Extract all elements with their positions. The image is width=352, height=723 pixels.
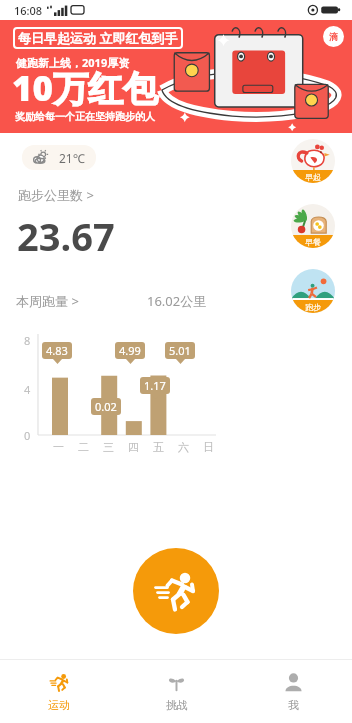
staticText: 10万红包 xyxy=(12,64,159,112)
button[interactable]: 我 xyxy=(235,660,352,723)
staticText: 六 xyxy=(178,440,189,454)
staticText: 16.02公里 xyxy=(147,292,207,310)
staticText: 二 xyxy=(78,440,89,454)
staticText: 早起 xyxy=(305,172,321,182)
staticText: 4.99 xyxy=(119,343,141,358)
staticText: 运动 xyxy=(48,698,70,712)
staticText: 健跑新上线，2019厚资 xyxy=(16,55,130,70)
staticText: 4.83 xyxy=(46,343,68,358)
staticText: 日 xyxy=(203,440,214,454)
staticText: 四 xyxy=(128,440,139,454)
button[interactable]: 每日早起运动 立即红包到手 xyxy=(0,20,352,133)
staticText: 0.02 xyxy=(95,399,117,414)
staticText: 三 xyxy=(103,440,114,454)
button[interactable]: 本周跑量 > xyxy=(0,290,352,312)
staticText: 8 xyxy=(24,333,31,348)
staticText: 0 xyxy=(24,428,31,443)
button[interactable]: 运动 xyxy=(0,660,118,723)
button[interactable]: 挑战 xyxy=(118,660,235,723)
button[interactable]: 跑步公里数 > xyxy=(16,184,96,206)
staticText: 21℃ xyxy=(59,150,85,166)
staticText: 跑步 xyxy=(305,302,321,312)
staticText: 五 xyxy=(153,440,164,454)
staticText: 早餐 xyxy=(305,237,321,247)
staticText: 16:08 xyxy=(14,3,43,18)
staticText: 4 xyxy=(24,382,31,397)
staticText: 一 xyxy=(53,440,64,454)
staticText: 1.17 xyxy=(144,378,166,393)
staticText: 奖励给每一个正在坚持跑步的人 xyxy=(15,110,155,123)
staticText: 滴 xyxy=(329,31,338,42)
button[interactable]: 开始跑步 xyxy=(133,548,219,634)
staticText: 每日早起运动 立即红包到手 xyxy=(18,29,178,47)
staticText: 本周跑量 > xyxy=(16,292,79,310)
staticText: 跑步公里数 > xyxy=(18,186,94,204)
button[interactable]: 21℃ xyxy=(22,145,96,170)
staticText: 挑战 xyxy=(166,698,188,712)
staticText: 我 xyxy=(288,698,299,712)
staticText: 23.67 xyxy=(17,210,115,262)
button[interactable]: 早起 xyxy=(291,139,335,183)
staticText: 5.01 xyxy=(169,343,191,358)
button[interactable]: 早餐 xyxy=(291,204,335,248)
button[interactable]: 跑步 xyxy=(291,269,335,313)
